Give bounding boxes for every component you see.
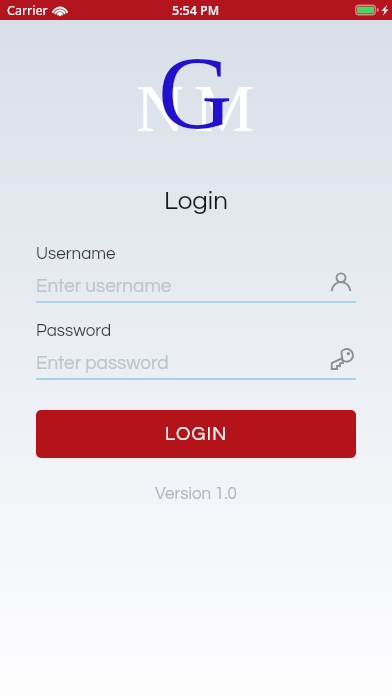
staticText: Enter username — [36, 276, 172, 296]
staticText: Version 1.0 — [0, 485, 392, 503]
staticText: Login — [0, 188, 392, 215]
button[interactable]: Password — [327, 344, 357, 374]
staticText: Enter password — [36, 353, 169, 373]
staticText: LOGIN — [165, 424, 228, 444]
staticText: NM — [136, 71, 264, 145]
staticText: Password — [36, 322, 112, 340]
staticText: Username — [36, 245, 116, 263]
staticText: Carrier — [7, 2, 48, 19]
button[interactable]: Username — [326, 268, 356, 298]
button[interactable]: LOGIN — [36, 410, 356, 458]
staticText: G — [158, 36, 233, 150]
staticText: 5:54 PM — [172, 2, 220, 19]
other: Wi-Fi — [53, 5, 67, 16]
other: Battery — [355, 4, 390, 16]
